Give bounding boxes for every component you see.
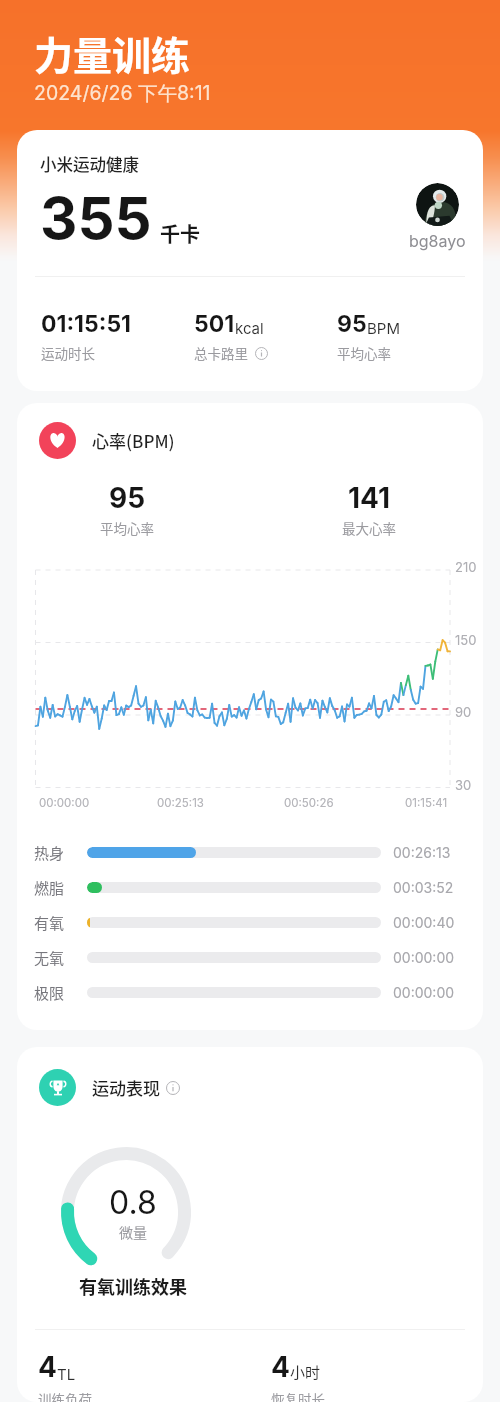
staticText: 热身 — [34, 842, 87, 864]
staticText: 小时 — [290, 1361, 321, 1383]
staticText: 无氧 — [34, 947, 87, 969]
staticText: 燃脂 — [34, 877, 87, 899]
staticText: 01:15:41 — [405, 796, 448, 810]
staticText: 最大心率 — [342, 518, 396, 538]
staticText: 95 — [337, 310, 367, 338]
staticText: 训练负荷 — [38, 1389, 92, 1402]
staticText: 运动表现 — [92, 1075, 160, 1100]
staticText: bg8ayo — [409, 231, 466, 250]
staticText: 00:50:26 — [284, 796, 334, 810]
staticText: 平均心率 — [100, 518, 154, 538]
staticText: 恢复时长 — [271, 1389, 325, 1402]
staticText: 95 — [109, 481, 146, 515]
staticText: 00:25:13 — [157, 796, 204, 810]
staticText: 0.8 — [109, 1183, 157, 1222]
staticText: 4 — [271, 1350, 290, 1384]
staticText: TL — [57, 1365, 76, 1383]
staticText: 141 — [348, 481, 391, 515]
staticText: 运动时长 — [41, 343, 95, 363]
button[interactable]: 小米运动健康 — [17, 130, 483, 391]
staticText: 有氧训练效果 — [79, 1273, 187, 1299]
staticText: 00:00:40 — [393, 914, 459, 931]
staticText: 210 — [455, 559, 477, 575]
staticText: 总卡路里 — [194, 343, 248, 363]
staticText: 心率(BPM) — [92, 428, 175, 453]
button[interactable]: 心率(BPM) — [17, 403, 483, 1030]
staticText: BPM — [367, 319, 400, 337]
staticText: 极限 — [34, 982, 87, 1004]
staticText: 00:03:52 — [393, 879, 459, 896]
staticText: 平均心率 — [337, 343, 391, 363]
staticText: kcal — [235, 319, 264, 337]
staticText: 00:00:00 — [393, 984, 459, 1001]
staticText: 00:00:00 — [39, 796, 90, 810]
staticText: 2024/6/26 下午8:11 — [34, 81, 211, 106]
staticText: 355 — [40, 183, 152, 253]
staticText: 小米运动健康 — [40, 152, 139, 176]
staticText: 微量 — [119, 1222, 147, 1242]
button[interactable]: 运动表现 — [17, 1047, 483, 1402]
staticText: 501 — [194, 310, 235, 338]
staticText: 150 — [455, 632, 477, 648]
staticText: 01:15:51 — [41, 310, 132, 338]
staticText: 4 — [38, 1350, 57, 1384]
staticText: 90 — [455, 704, 472, 720]
staticText: 有氧 — [34, 912, 87, 934]
staticText: 千卡 — [160, 219, 200, 248]
staticText: 00:00:00 — [393, 949, 459, 966]
staticText: 00:26:13 — [393, 844, 459, 861]
staticText: 力量训练 — [34, 25, 191, 81]
staticText: 30 — [455, 777, 472, 793]
